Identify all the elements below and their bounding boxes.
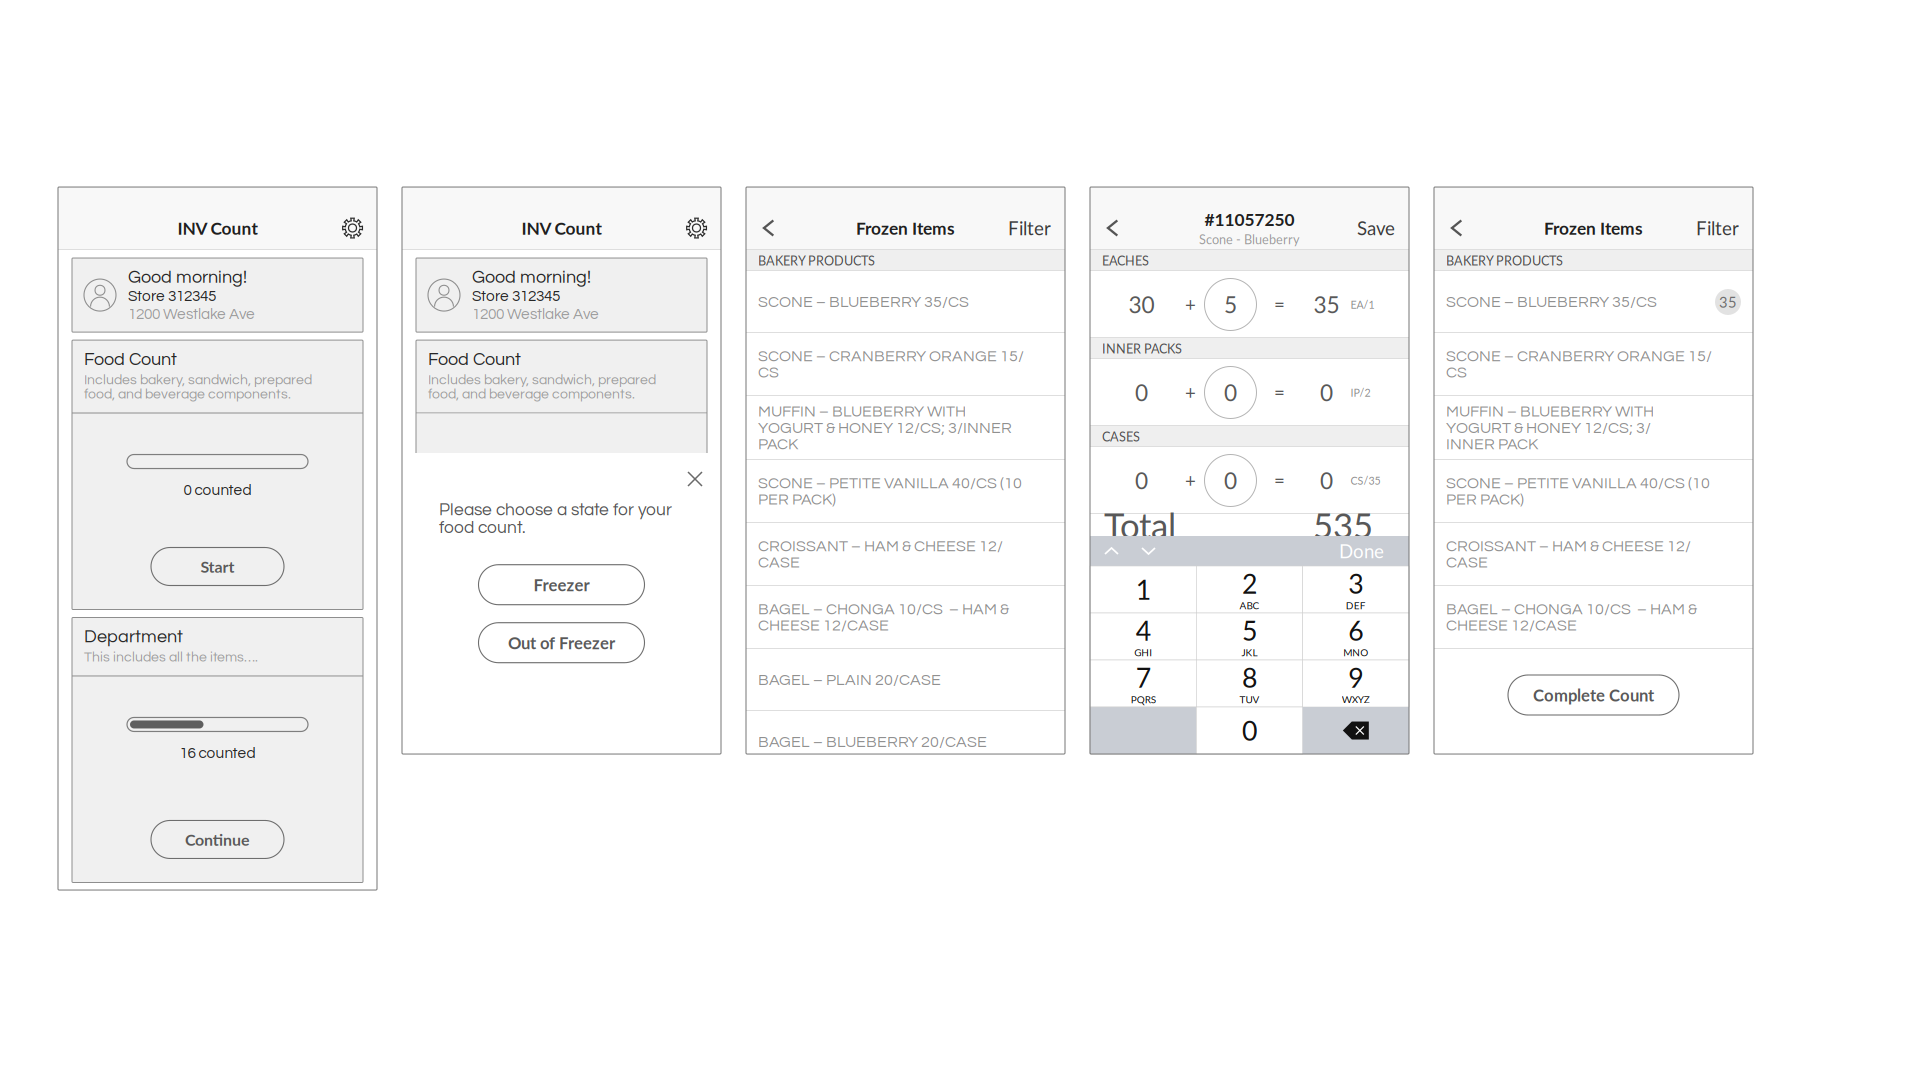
button[interactable]: BAGEL – BLUEBERRY 20/CASE	[746, 711, 1065, 773]
button[interactable]: Close	[687, 453, 721, 487]
staticText: SCONE – PETITE VANILLA 40/CS (10 PER PAC…	[1446, 475, 1710, 508]
button[interactable]: BAGEL – PLAIN 20/CASE	[746, 649, 1065, 711]
staticText: =	[1274, 469, 1285, 492]
staticText: 35	[1313, 291, 1339, 318]
staticText: 1200 Westlake Ave	[128, 306, 255, 322]
staticText: 30	[1128, 291, 1154, 318]
staticText: +	[1185, 381, 1196, 404]
staticText: Total	[1104, 504, 1176, 546]
button[interactable]: Delete	[1303, 707, 1409, 754]
button[interactable]: BAGEL – CHONGA 10/CS – HAM & CHEESE 12/C…	[1434, 586, 1753, 649]
staticText: BAKERY PRODUCTS	[1446, 253, 1563, 268]
staticText: CROISSANT – HAM & CHEESE 12/ CASE	[1446, 538, 1691, 571]
staticText: 6	[1348, 614, 1363, 646]
button[interactable]: MUFFIN – BLUEBERRY WITH YOGURT & HONEY 1…	[746, 396, 1065, 460]
staticText: =	[1274, 293, 1285, 316]
button[interactable]: SCONE – PETITE VANILLA 40/CS (10 PER PAC…	[746, 460, 1065, 523]
button[interactable]: 9	[1303, 660, 1409, 707]
staticText: 5	[1242, 614, 1257, 646]
staticText: 0	[1320, 467, 1333, 494]
staticText: +	[1185, 293, 1196, 316]
staticText: Freezer	[533, 575, 589, 595]
button[interactable]: SCONE – PETITE VANILLA 40/CS (10 PER PAC…	[1434, 460, 1753, 523]
staticText: Food Count	[428, 350, 521, 369]
staticText: Start	[200, 557, 234, 576]
staticText: 7	[1136, 661, 1151, 693]
staticText: INV Count	[177, 218, 257, 238]
button[interactable]: SCONE – BLUEBERRY 35/CS	[746, 271, 1065, 333]
staticText: BAGEL – CHONGA 10/CS – HAM & CHEESE 12/C…	[758, 601, 1009, 634]
staticText: 0	[1224, 467, 1237, 494]
staticText: Filter	[1008, 217, 1051, 239]
staticText: #11057250	[1204, 209, 1294, 230]
staticText: CROISSANT – HAM & CHEESE 12/ CASE	[758, 538, 1003, 571]
button[interactable]: 8	[1196, 660, 1303, 707]
button[interactable]: Freezer	[478, 565, 644, 605]
button[interactable]: Filter	[1696, 217, 1753, 239]
button[interactable]: 6	[1303, 613, 1409, 660]
staticText: 9	[1348, 661, 1363, 693]
staticText: Store 312345	[128, 288, 216, 304]
staticText: 35	[1719, 293, 1737, 311]
staticText: Includes bakery, sandwich, prepared food…	[84, 373, 312, 401]
button[interactable]: Done	[1339, 540, 1409, 562]
staticText: CS/35	[1350, 474, 1380, 487]
button[interactable]	[1090, 707, 1196, 754]
button[interactable]: Previous field	[1090, 546, 1119, 556]
staticText: IP/2	[1350, 386, 1370, 399]
button[interactable]: Back	[1434, 219, 1466, 237]
staticText: Continue	[185, 830, 250, 849]
button[interactable]: MUFFIN – BLUEBERRY WITH YOGURT & HONEY 1…	[1434, 396, 1753, 460]
button[interactable]: SCONE – CRANBERRY ORANGE 15/ CS	[1434, 333, 1753, 396]
staticText: 3	[1348, 567, 1363, 599]
button[interactable]: 1	[1090, 566, 1196, 613]
staticText: 0	[1242, 714, 1257, 746]
button[interactable]: Back	[746, 219, 778, 237]
staticText: +	[1185, 469, 1196, 492]
staticText: ABC	[1239, 599, 1259, 611]
staticText: TUV	[1239, 693, 1259, 705]
staticText: Scone - Blueberry	[1199, 232, 1300, 247]
staticText: 0	[1224, 379, 1237, 406]
button[interactable]: CROISSANT – HAM & CHEESE 12/ CASE	[1434, 523, 1753, 586]
staticText: 0	[1135, 379, 1148, 406]
button[interactable]: Back	[1090, 219, 1122, 237]
button[interactable]: Settings	[686, 217, 721, 238]
button[interactable]: Complete Count	[1508, 675, 1679, 715]
button[interactable]: 5	[1196, 613, 1303, 660]
staticText: GHI	[1134, 646, 1152, 658]
staticText: BAGEL – PLAIN 20/CASE	[758, 672, 941, 688]
staticText: 1200 Westlake Ave	[472, 306, 599, 322]
button[interactable]: Save	[1357, 217, 1409, 239]
button[interactable]: Continue	[151, 820, 284, 858]
button[interactable]: CROISSANT – HAM & CHEESE 12/ CASE	[746, 523, 1065, 586]
button[interactable]: BAGEL – CHONGA 10/CS – HAM & CHEESE 12/C…	[746, 586, 1065, 649]
button[interactable]: 4	[1090, 613, 1196, 660]
button[interactable]: Settings	[342, 217, 377, 238]
staticText: Good morning!	[472, 268, 591, 286]
button[interactable]: SCONE – CRANBERRY ORANGE 15/ CS	[746, 333, 1065, 396]
staticText: 0 counted	[183, 482, 251, 498]
staticText: Frozen Items	[856, 218, 955, 238]
staticText: SCONE – PETITE VANILLA 40/CS (10 PER PAC…	[758, 475, 1022, 508]
staticText: 0	[1320, 379, 1333, 406]
staticText: Complete Count	[1533, 685, 1654, 705]
button[interactable]: SCONE – BLUEBERRY 35/CS	[1434, 271, 1753, 333]
button[interactable]: 3	[1303, 566, 1409, 613]
button[interactable]: Out of Freezer	[478, 623, 644, 663]
staticText: MNO	[1343, 646, 1368, 658]
staticText: Save	[1357, 217, 1395, 239]
button[interactable]: Start	[151, 547, 284, 585]
staticText: Please choose a state for your food coun…	[439, 501, 672, 537]
button[interactable]: 7	[1090, 660, 1196, 707]
button[interactable]: 0	[1196, 707, 1303, 754]
button[interactable]: Next field	[1119, 546, 1156, 556]
staticText: Filter	[1696, 217, 1739, 239]
staticText: Out of Freezer	[508, 633, 615, 653]
button[interactable]: Filter	[1008, 217, 1065, 239]
staticText: Department	[84, 627, 183, 646]
staticText: Store 312345	[472, 288, 560, 304]
button[interactable]: 2	[1196, 566, 1303, 613]
staticText: SCONE – CRANBERRY ORANGE 15/ CS	[758, 348, 1024, 381]
staticText: INV Count	[521, 218, 601, 238]
